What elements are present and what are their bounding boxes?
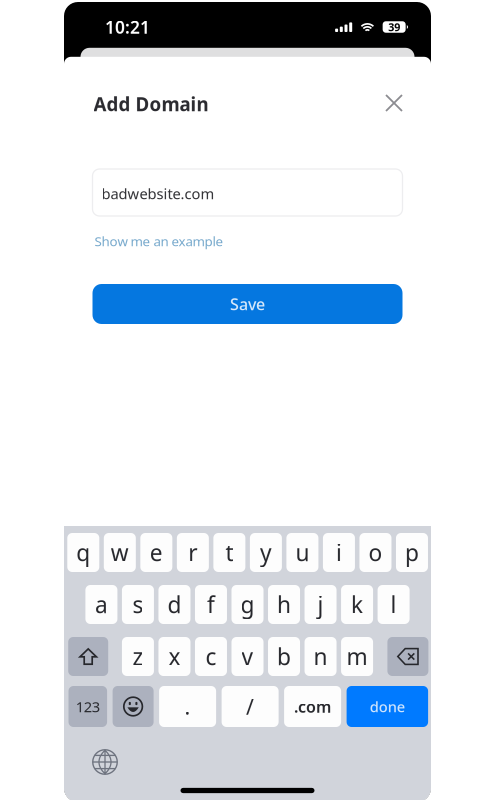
button[interactable]: c bbox=[195, 637, 227, 676]
staticText: o bbox=[368, 537, 382, 567]
staticText: k bbox=[351, 589, 363, 619]
button[interactable]: o bbox=[359, 533, 391, 572]
staticText: f bbox=[207, 589, 215, 619]
button[interactable]: u bbox=[286, 533, 318, 572]
button[interactable]: w bbox=[104, 533, 136, 572]
button[interactable]: t bbox=[213, 533, 245, 572]
button[interactable]: b bbox=[268, 637, 300, 676]
button[interactable]: Shift bbox=[68, 637, 108, 676]
staticText: badwebsite.com bbox=[101, 184, 214, 203]
staticText: q bbox=[76, 537, 90, 567]
button[interactable]: j bbox=[304, 585, 336, 624]
button[interactable]: Close bbox=[373, 82, 415, 124]
button[interactable]: h bbox=[268, 585, 300, 624]
button[interactable]: Delete bbox=[387, 637, 428, 676]
staticText: z bbox=[132, 641, 143, 671]
staticText: y bbox=[260, 537, 272, 567]
staticText: done bbox=[370, 697, 405, 716]
button[interactable]: y bbox=[250, 533, 282, 572]
button[interactable]: g bbox=[231, 585, 263, 624]
staticText: d bbox=[167, 589, 181, 619]
staticText: n bbox=[313, 641, 327, 671]
staticText: r bbox=[188, 537, 197, 567]
button[interactable]: m bbox=[341, 637, 373, 676]
staticText: s bbox=[132, 589, 143, 619]
button[interactable]: s bbox=[122, 585, 154, 624]
button[interactable]: e bbox=[140, 533, 172, 572]
staticText: j bbox=[317, 589, 323, 619]
staticText: Add Domain bbox=[93, 92, 208, 116]
staticText: Show me an example bbox=[94, 232, 223, 250]
staticText: g bbox=[240, 589, 254, 619]
button[interactable]: n bbox=[304, 637, 336, 676]
staticText: a bbox=[95, 589, 108, 619]
staticText: w bbox=[111, 537, 129, 567]
staticText: i bbox=[336, 537, 342, 567]
button[interactable]: Show me an example bbox=[94, 231, 406, 251]
staticText: x bbox=[168, 641, 180, 671]
button[interactable]: / bbox=[222, 686, 279, 727]
button[interactable]: .com bbox=[284, 686, 341, 727]
staticText: 39 bbox=[388, 20, 400, 34]
staticText: .com bbox=[294, 696, 331, 717]
button[interactable]: v bbox=[231, 637, 263, 676]
staticText: b bbox=[277, 641, 291, 671]
button[interactable]: Save bbox=[92, 284, 402, 324]
button[interactable]: 123 bbox=[68, 686, 107, 727]
button[interactable]: Emoji bbox=[113, 686, 154, 727]
staticText: l bbox=[391, 589, 397, 619]
staticText: h bbox=[277, 589, 291, 619]
button[interactable]: x bbox=[158, 637, 190, 676]
button[interactable]: Change keyboard bbox=[93, 750, 117, 774]
staticText: Save bbox=[230, 293, 265, 315]
button[interactable]: f bbox=[195, 585, 227, 624]
staticText: m bbox=[347, 641, 368, 671]
button[interactable]: i bbox=[323, 533, 355, 572]
button[interactable]: done bbox=[347, 686, 428, 727]
button[interactable]: l bbox=[378, 585, 410, 624]
button[interactable]: . bbox=[159, 686, 216, 727]
staticText: / bbox=[246, 692, 254, 721]
button[interactable]: p bbox=[396, 533, 428, 572]
button[interactable]: k bbox=[341, 585, 373, 624]
button[interactable]: z bbox=[122, 637, 154, 676]
staticText: . bbox=[185, 692, 191, 721]
staticText: u bbox=[295, 537, 309, 567]
staticText: 123 bbox=[76, 697, 100, 716]
button[interactable]: d bbox=[158, 585, 190, 624]
staticText: 10:21 bbox=[105, 15, 150, 38]
button[interactable]: r bbox=[177, 533, 209, 572]
staticText: t bbox=[225, 537, 233, 567]
button[interactable]: a bbox=[85, 585, 117, 624]
button[interactable]: q bbox=[67, 533, 99, 572]
staticText: c bbox=[205, 641, 216, 671]
staticText: p bbox=[405, 537, 419, 567]
staticText: e bbox=[150, 537, 163, 567]
staticText: v bbox=[241, 641, 253, 671]
